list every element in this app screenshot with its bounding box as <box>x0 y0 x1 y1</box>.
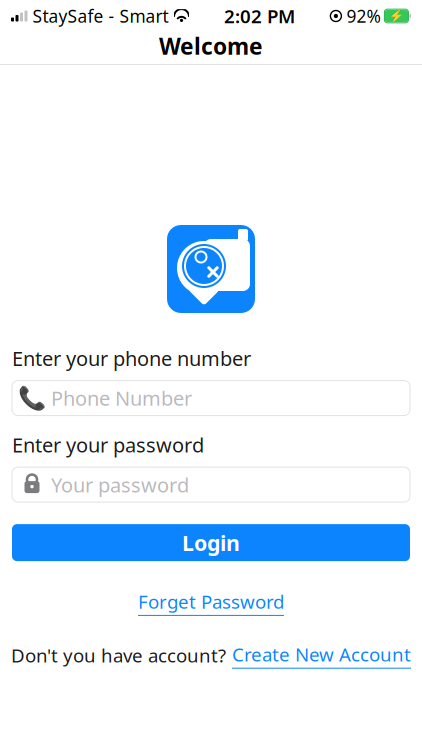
staticText: Enter your phone number <box>12 345 251 372</box>
button[interactable]: Forget Password <box>138 589 284 616</box>
staticText: Phone Number <box>51 385 192 411</box>
button[interactable]: Login <box>12 524 410 561</box>
staticText: ⚡ <box>389 9 404 23</box>
staticText: Welcome <box>159 31 263 61</box>
button[interactable]: 📞 <box>12 381 410 416</box>
staticText: Don't you have account? <box>11 643 226 668</box>
staticText: 📞 <box>18 385 46 411</box>
staticText: Enter your password <box>12 432 204 458</box>
staticText: Forget Password <box>138 589 284 614</box>
button[interactable]: Create New Account <box>232 642 411 669</box>
staticText: Your password <box>51 471 189 498</box>
staticText: Login <box>182 528 240 557</box>
button[interactable]: Your password <box>12 467 410 502</box>
staticText: 92% <box>346 4 380 27</box>
staticText: Create New Account <box>232 642 411 667</box>
staticText: StaySafe - Smart <box>32 4 168 27</box>
staticText: 2:02 PM <box>224 4 295 28</box>
